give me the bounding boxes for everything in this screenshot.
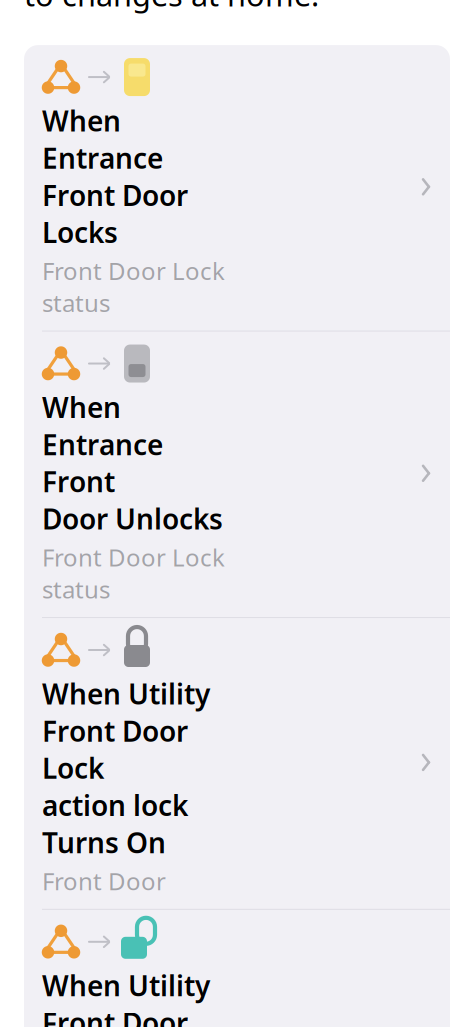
staticText: Front Door <box>42 865 166 897</box>
staticText: When Entrance Front Door Locks <box>42 102 188 251</box>
staticText: When Entrance Front Door Unlocks <box>42 388 223 537</box>
button[interactable]: When Entrance Front Door Locks <box>24 45 450 331</box>
staticText: When Utility Front Door Lock action lock… <box>42 675 210 861</box>
staticText: When Utility Front Door Lock action unlo… <box>42 967 224 1027</box>
button[interactable]: When Utility Front Door Lock action lock… <box>24 618 450 909</box>
staticText: Front Door Lock status <box>42 541 225 605</box>
staticText: Have your accessories react to changes a… <box>24 0 426 15</box>
button[interactable]: When Utility Front Door Lock action unlo… <box>24 910 450 1027</box>
staticText: Front Door Lock status <box>42 255 225 318</box>
button[interactable]: When Entrance Front Door Unlocks <box>24 331 450 617</box>
